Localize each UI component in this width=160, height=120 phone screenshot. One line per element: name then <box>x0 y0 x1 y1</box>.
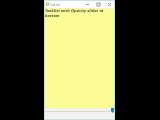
button[interactable]: Opacity slider <box>45 108 114 119</box>
button[interactable]: Close <box>105 1 114 8</box>
staticText: Task List <box>50 3 61 7</box>
button[interactable]: Maximize <box>94 1 103 8</box>
button[interactable]: Minimize <box>83 1 92 8</box>
staticText: Tasklist with Opacity slider at bottom <box>45 8 114 18</box>
